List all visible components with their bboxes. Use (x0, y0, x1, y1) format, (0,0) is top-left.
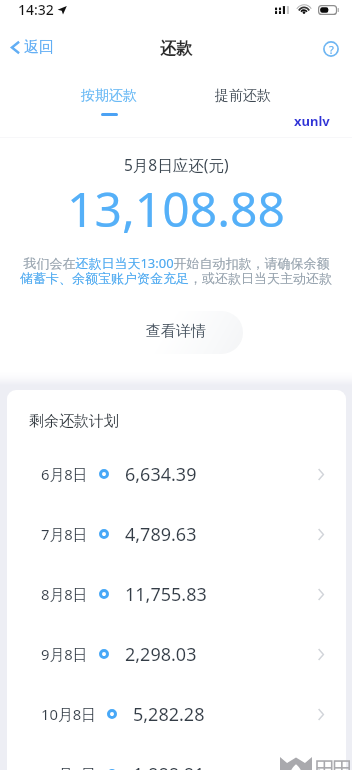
staticText: 11月8日 (41, 764, 96, 770)
staticText: 储蓄卡、余额宝账户资金充足，或还款日当天主动还款 (20, 270, 332, 286)
staticText: 4,789.63 (125, 522, 197, 547)
staticText: 1,888.81 (133, 762, 205, 770)
staticText: 5,282.28 (133, 702, 205, 727)
staticText: 还款 (160, 39, 192, 59)
button[interactable]: 9月8日 (7, 624, 346, 684)
staticText: 查看详情 (146, 322, 206, 341)
staticText: 我们会在还款日当天13:00开始自动扣款，请确保余额 (23, 254, 330, 272)
staticText: 11,755.83 (125, 582, 207, 607)
staticText: ? (329, 42, 334, 57)
staticText: 5月8日应还(元) (124, 154, 229, 175)
button[interactable]: 按期还款 (67, 83, 151, 120)
staticText: 2,298.03 (125, 642, 197, 667)
staticText: 14:32 (18, 0, 54, 19)
button[interactable]: 6月8日 (7, 444, 346, 504)
staticText: 返回 (24, 38, 54, 57)
button[interactable]: Help (321, 39, 341, 59)
staticText: 6,634.39 (125, 462, 197, 487)
staticText: xunlv (294, 112, 330, 130)
button[interactable]: 7月8日 (7, 504, 346, 564)
staticText: 按期还款 (81, 87, 137, 105)
button[interactable]: 查看详情 (116, 311, 243, 354)
staticText: 6月8日 (41, 464, 88, 484)
button[interactable]: 11月8日 (7, 744, 346, 770)
button[interactable]: 返回 (0, 34, 64, 61)
button[interactable]: 提前还款 (201, 83, 285, 109)
staticText: 13,108.88 (67, 176, 285, 241)
staticText: 7月8日 (41, 524, 88, 544)
staticText: 10月8日 (41, 704, 96, 724)
staticText: 9月8日 (41, 644, 88, 664)
button[interactable]: 8月8日 (7, 564, 346, 624)
staticText: 提前还款 (215, 87, 271, 105)
staticText: 剩余还款计划 (29, 412, 119, 431)
button[interactable]: 10月8日 (7, 684, 346, 744)
staticText: 8月8日 (41, 584, 88, 604)
